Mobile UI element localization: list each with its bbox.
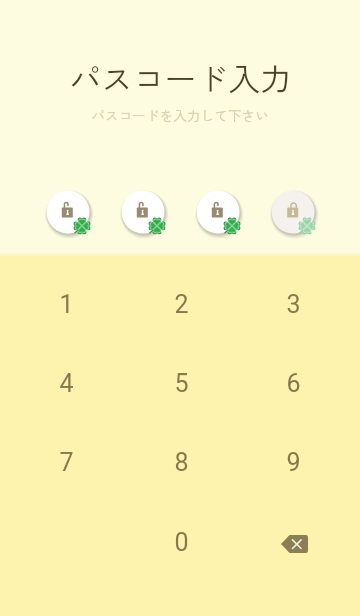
button[interactable]: 2 (135, 266, 227, 342)
button[interactable]: Empty digit (269, 188, 323, 242)
staticText: 2 (174, 290, 189, 319)
button[interactable]: 7 (20, 424, 112, 500)
staticText: 7 (59, 448, 74, 477)
staticText: 9 (286, 448, 301, 477)
button[interactable]: Entered digit (44, 188, 98, 242)
button[interactable]: Entered digit (194, 188, 248, 242)
button[interactable]: 6 (247, 345, 339, 421)
button[interactable]: 9 (247, 424, 339, 500)
staticText: パスコード入力 (69, 54, 292, 100)
button[interactable]: Delete (248, 506, 340, 582)
staticText: 6 (286, 369, 301, 398)
button[interactable]: Entered digit (119, 188, 173, 242)
button[interactable]: 8 (135, 424, 227, 500)
staticText: 4 (59, 369, 74, 398)
staticText: パスコードを入力して下さい (91, 105, 269, 125)
staticText: 0 (174, 528, 189, 557)
staticText: 1 (59, 290, 74, 319)
staticText: 8 (174, 448, 189, 477)
button[interactable]: 4 (20, 345, 112, 421)
button[interactable]: 1 (20, 266, 112, 342)
staticText: 5 (174, 369, 189, 398)
button[interactable]: 5 (135, 345, 227, 421)
button[interactable]: 3 (247, 266, 339, 342)
staticText: 3 (286, 290, 301, 319)
button[interactable]: 0 (135, 504, 227, 580)
